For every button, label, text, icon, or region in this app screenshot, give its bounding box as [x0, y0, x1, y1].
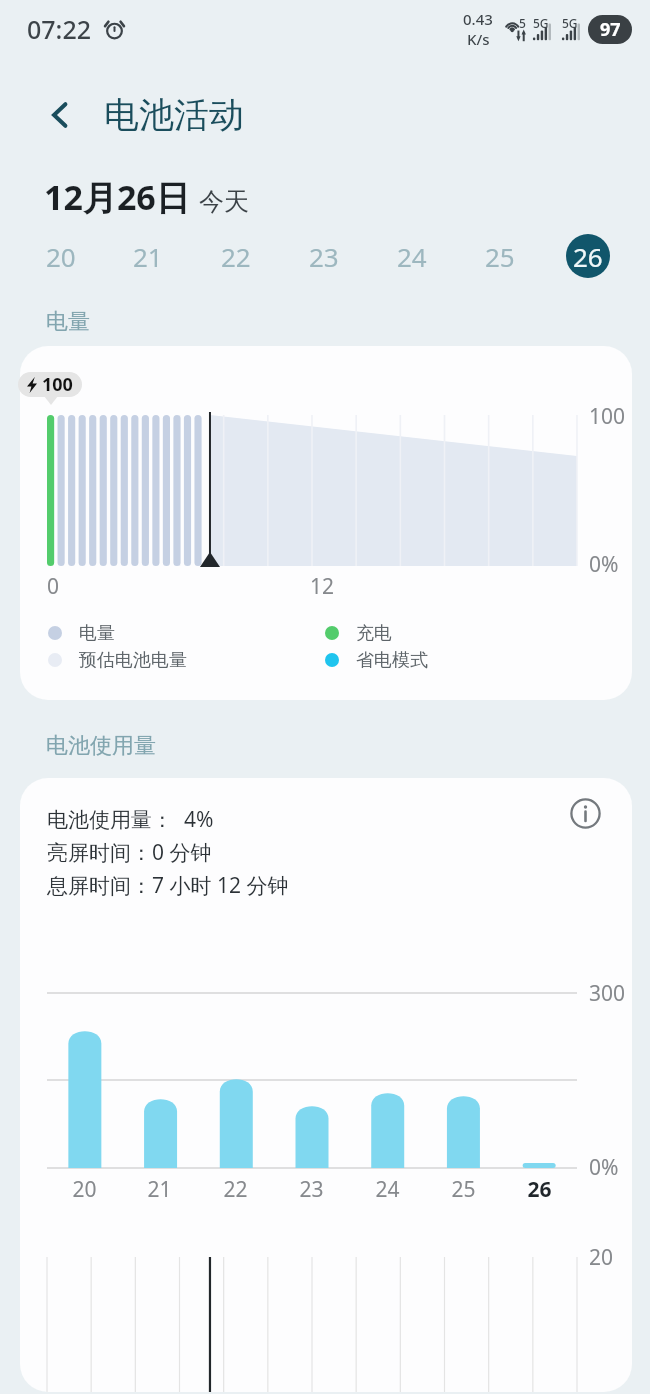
staticText: 23 — [309, 239, 339, 274]
staticText: 电池活动 — [104, 93, 244, 137]
staticText: 预估电池电量 — [79, 649, 187, 672]
button[interactable]: 22 — [192, 218, 280, 294]
staticText: 12 — [310, 572, 335, 601]
staticText: 20 — [589, 1243, 614, 1272]
staticText: 97 — [600, 17, 621, 42]
staticText: 22 — [221, 239, 251, 274]
staticText: K/s — [467, 29, 490, 49]
button[interactable]: 电池使用量： 4% — [20, 778, 632, 1392]
button[interactable]: 26 — [544, 218, 632, 294]
staticText: 0.43 — [463, 9, 493, 29]
button[interactable]: 21 — [104, 218, 192, 294]
staticText: 息屏时间：7 小时 12 分钟 — [47, 871, 289, 900]
staticText: 5G — [533, 15, 549, 31]
staticText: 0% — [589, 550, 619, 579]
staticText: 电池使用量： 4% — [47, 805, 214, 834]
staticText: 电量 — [46, 308, 90, 336]
staticText: 20 — [72, 1175, 97, 1204]
button[interactable]: Back — [36, 91, 84, 139]
staticText: 07:22 — [27, 12, 92, 46]
staticText: 22 — [223, 1175, 248, 1204]
button[interactable]: 23 — [280, 218, 368, 294]
staticText: 20 — [46, 239, 76, 274]
staticText: 0% — [589, 1153, 619, 1182]
staticText: 电量 — [79, 622, 115, 645]
button[interactable]: 省电模式 — [325, 648, 615, 672]
staticText: 21 — [133, 239, 163, 274]
staticText: 23 — [299, 1175, 324, 1204]
staticText: 100 — [589, 402, 626, 431]
staticText: 24 — [397, 239, 427, 274]
staticText: 300 — [589, 979, 626, 1008]
staticText: 省电模式 — [356, 649, 428, 672]
staticText: 充电 — [356, 622, 392, 645]
button[interactable]: 24 — [368, 218, 456, 294]
staticText: 0 — [47, 572, 60, 601]
staticText: 25 — [451, 1175, 476, 1204]
button[interactable]: 20 — [17, 218, 104, 294]
staticText: 26 — [573, 239, 603, 274]
staticText: 24 — [375, 1175, 400, 1204]
staticText: 亮屏时间：0 分钟 — [47, 838, 212, 867]
staticText: 今天 — [199, 186, 249, 217]
staticText: 12月26日 — [44, 174, 190, 220]
staticText: 26 — [527, 1175, 552, 1204]
button[interactable]: Info — [563, 791, 607, 835]
staticText: 21 — [147, 1175, 172, 1204]
button[interactable]: 25 — [456, 218, 544, 294]
button[interactable]: 充电 — [325, 621, 615, 645]
button[interactable]: 100 — [20, 346, 632, 700]
staticText: 5G — [562, 15, 578, 31]
staticText: 25 — [485, 239, 515, 274]
staticText: 电池使用量 — [46, 732, 156, 760]
button[interactable]: 电量 — [20, 621, 325, 645]
staticText: 5 — [519, 15, 526, 31]
staticText: 100 — [42, 372, 73, 397]
button[interactable]: 预估电池电量 — [20, 648, 325, 672]
